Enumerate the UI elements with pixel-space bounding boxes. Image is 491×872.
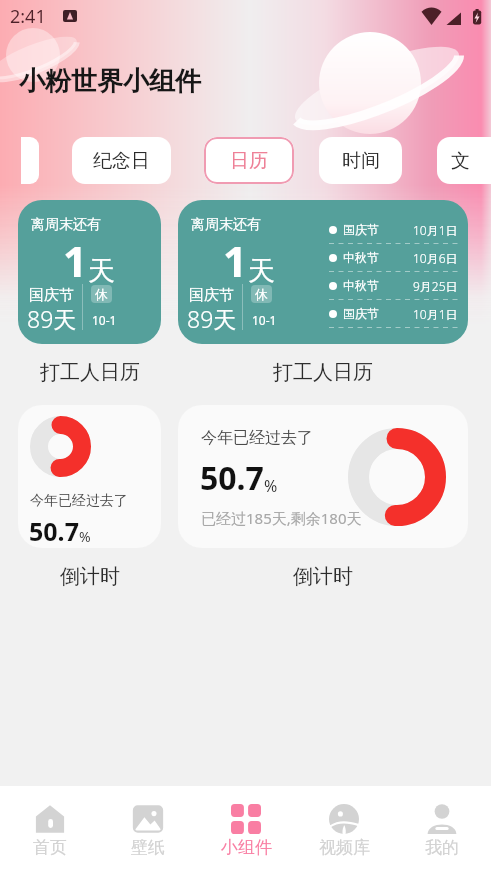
staticText: %	[79, 527, 91, 546]
staticText: 我的	[425, 837, 459, 858]
staticText: 89天	[27, 303, 77, 334]
button[interactable]: Profile	[393, 786, 491, 872]
staticText: 国庆节	[189, 286, 234, 305]
staticText: 国庆节	[29, 286, 74, 305]
staticText: 休	[255, 286, 268, 302]
button[interactable]: 时间	[319, 137, 402, 184]
button[interactable]: 今年已经过去了	[178, 405, 468, 548]
staticText: 10月1日	[413, 306, 458, 322]
staticText: 打工人日历	[273, 360, 373, 385]
staticText: 10月1日	[413, 222, 458, 238]
staticText: 倒计时	[60, 564, 120, 589]
staticText: 打工人日历	[40, 360, 140, 385]
staticText: 首页	[33, 837, 67, 858]
button[interactable]: 文	[437, 137, 491, 184]
staticText: 10-1	[92, 312, 117, 328]
staticText: 2:41	[10, 4, 46, 29]
button[interactable]: 离周末还有	[18, 200, 161, 344]
staticText: 小粉世界小组件	[19, 65, 201, 98]
button[interactable]: Home	[0, 786, 99, 872]
staticText: 文	[451, 149, 470, 173]
staticText: 9月25日	[413, 278, 458, 294]
staticText: 国庆节	[343, 306, 379, 321]
staticText: 已经过185天,剩余180天	[201, 508, 362, 528]
staticText: 89天	[187, 303, 237, 334]
staticText: 纪念日	[93, 149, 150, 173]
staticText: 1	[223, 232, 248, 289]
staticText: 休	[95, 286, 108, 302]
button[interactable]: 日历	[204, 137, 294, 184]
staticText: 离周末还有	[191, 216, 261, 234]
staticText: 视频库	[319, 837, 370, 858]
staticText: 50.7	[200, 456, 264, 500]
staticText: 10-1	[252, 312, 277, 328]
button[interactable]: 今年已经过去了	[18, 405, 161, 548]
staticText: 今年已经过去了	[201, 428, 313, 448]
staticText: 10月6日	[413, 250, 458, 266]
staticText: 天	[248, 254, 275, 288]
staticText: 今年已经过去了	[30, 492, 128, 510]
staticText: 国庆节	[343, 222, 379, 237]
staticText: 中秋节	[343, 250, 379, 265]
staticText: 天	[88, 254, 115, 288]
staticText: 倒计时	[293, 564, 353, 589]
button[interactable]: 离周末还有	[178, 200, 468, 344]
staticText: 1	[63, 232, 88, 289]
button[interactable]: 纪念日	[72, 137, 171, 184]
staticText: 壁纸	[131, 837, 165, 858]
button[interactable]	[21, 137, 39, 184]
staticText: 小组件	[221, 837, 272, 858]
staticText: 中秋节	[343, 278, 379, 293]
staticText: 日历	[230, 149, 268, 173]
staticText: 50.7	[29, 514, 79, 548]
staticText: 时间	[342, 149, 380, 173]
button[interactable]: Widgets	[197, 786, 295, 872]
button[interactable]: Videos	[295, 786, 393, 872]
staticText: 离周末还有	[31, 216, 101, 234]
staticText: %	[264, 475, 278, 497]
button[interactable]: Wallpaper	[99, 786, 197, 872]
